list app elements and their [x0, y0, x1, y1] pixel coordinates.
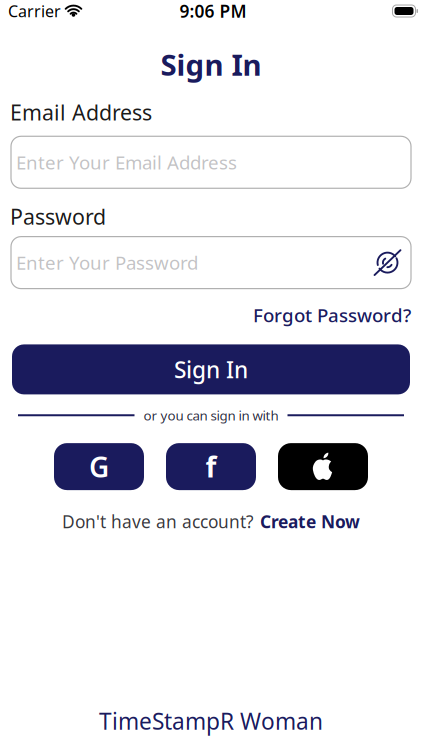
button[interactable]: Enter Your Email Address — [11, 136, 411, 188]
staticText: TimeStampR Woman — [99, 706, 323, 736]
button[interactable]: Enter Your Password — [11, 237, 411, 289]
staticText: or you can sign in with — [143, 406, 278, 424]
button[interactable]: Sign In — [12, 344, 410, 394]
staticText: Sign In — [160, 45, 261, 84]
staticText: 9:06 PM — [179, 0, 246, 22]
staticText: Email Address — [10, 98, 152, 126]
staticText: Password — [10, 202, 106, 231]
staticText: Forgot Password? — [253, 303, 411, 327]
button[interactable]: f — [166, 443, 256, 490]
button[interactable]: Forgot Password? — [253, 303, 411, 327]
staticText: Sign In — [174, 354, 248, 384]
button[interactable] — [374, 249, 401, 276]
staticText: Enter Your Email Address — [16, 150, 237, 175]
staticText: G — [89, 448, 109, 485]
staticText: f — [205, 448, 216, 485]
staticText: Create Now — [260, 510, 360, 533]
button[interactable] — [278, 443, 368, 490]
staticText: Don't have an account? — [62, 510, 254, 533]
button[interactable]: Create Now — [260, 510, 360, 533]
button[interactable]: G — [54, 443, 144, 490]
staticText: Carrier — [8, 0, 61, 22]
staticText: Enter Your Password — [16, 250, 198, 275]
